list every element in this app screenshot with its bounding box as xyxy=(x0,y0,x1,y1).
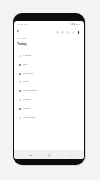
button[interactable]: Notifications xyxy=(59,29,65,35)
staticText: Coding xyxy=(23,98,31,101)
staticText: Today xyxy=(17,41,27,46)
button[interactable]: Jet stream xyxy=(14,69,84,78)
button[interactable]: Design xyxy=(14,104,84,113)
button[interactable]: Home xyxy=(45,151,53,159)
staticText: 10:30 AM xyxy=(17,22,28,25)
staticText: Design xyxy=(23,107,31,110)
button[interactable]: App update xyxy=(14,113,84,122)
staticText: App update xyxy=(23,116,35,119)
staticText: ▾ ▮ ▮ 86% xyxy=(70,22,81,25)
button[interactable]: Programming xyxy=(14,86,84,95)
button[interactable]: Java xyxy=(14,60,84,69)
button[interactable]: Back xyxy=(15,28,21,34)
button[interactable]: Search xyxy=(64,29,70,35)
button[interactable]: Account xyxy=(54,29,60,35)
button[interactable]: Android xyxy=(14,51,84,60)
button[interactable]: Study xyxy=(14,77,84,86)
button[interactable]: Bookmark xyxy=(75,29,81,35)
button[interactable]: Share xyxy=(70,29,76,35)
button[interactable]: Coding xyxy=(14,95,84,104)
button[interactable]: Recents xyxy=(26,151,34,159)
staticText: Java xyxy=(23,63,28,66)
button[interactable]: Back xyxy=(65,151,73,159)
staticText: ALL TASKS xyxy=(17,37,27,40)
staticText: Android xyxy=(23,54,32,57)
staticText: Programming xyxy=(23,89,38,92)
staticText: Study xyxy=(23,80,29,83)
staticText: Jet stream xyxy=(23,72,34,75)
